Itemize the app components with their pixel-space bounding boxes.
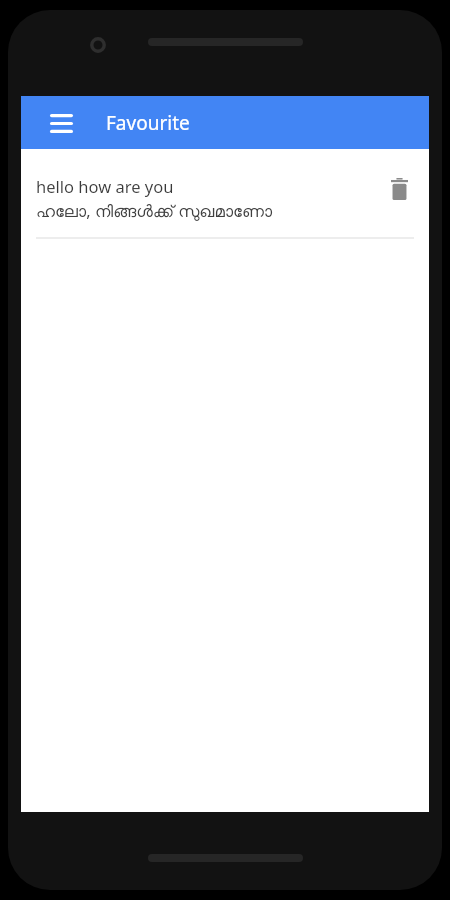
staticText: hello how are you xyxy=(36,175,174,197)
button[interactable]: hello how are you xyxy=(21,149,429,237)
staticText: Favourite xyxy=(106,110,190,136)
button[interactable]: Delete xyxy=(377,167,421,211)
button[interactable]: Open navigation drawer xyxy=(39,101,83,145)
staticText: ഹലോ, നിങ്ങൾക്ക് സുഖമാണോ xyxy=(36,199,273,221)
